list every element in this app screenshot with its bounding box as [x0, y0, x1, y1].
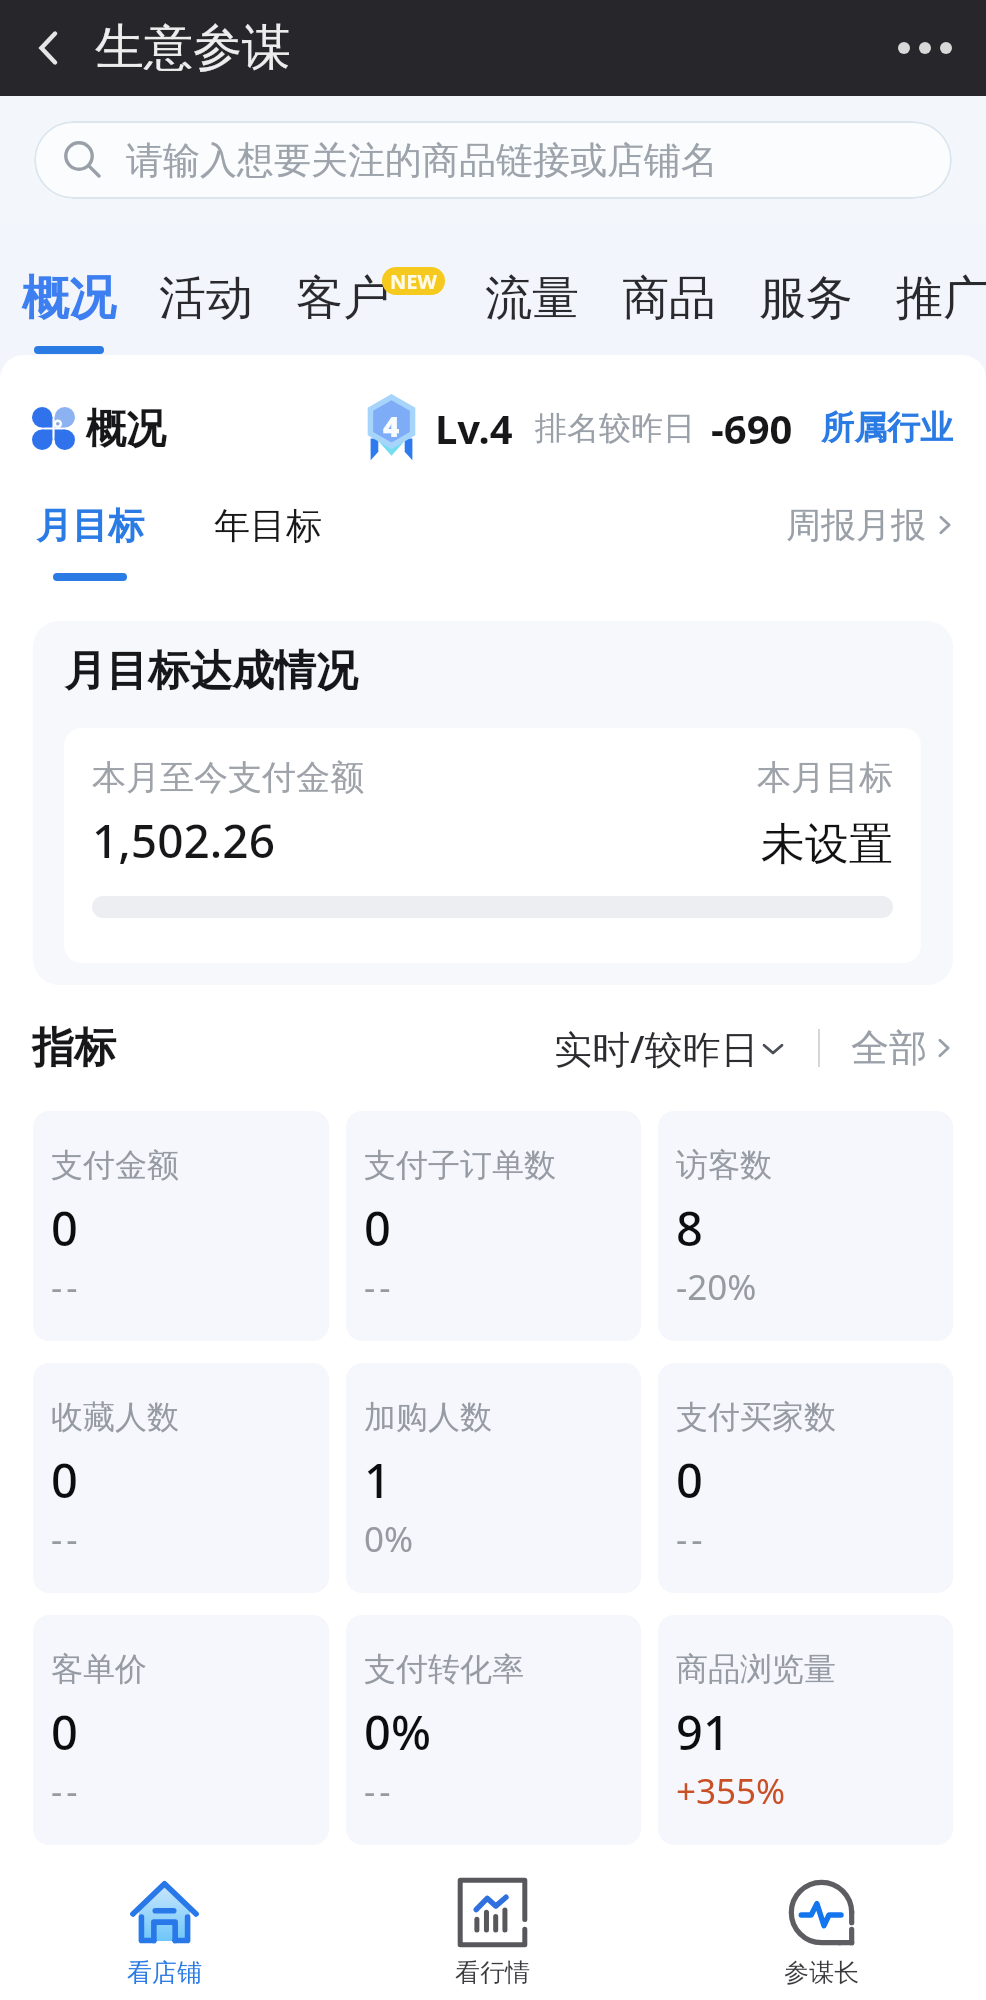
button[interactable]: More options: [890, 13, 960, 83]
staticText: --: [676, 1515, 707, 1563]
staticText: 1: [364, 1448, 391, 1512]
button[interactable]: 收藏人数: [33, 1363, 329, 1593]
staticText: 0: [51, 1700, 78, 1764]
staticText: 8: [676, 1196, 703, 1260]
staticText: 商品: [622, 269, 716, 328]
staticText: 支付金额: [51, 1145, 179, 1185]
staticText: NEW: [390, 268, 437, 295]
staticText: --: [51, 1515, 82, 1563]
button[interactable]: 所属行业: [821, 407, 953, 449]
staticText: 指标: [32, 1022, 116, 1075]
button[interactable]: 商品浏览量: [658, 1615, 953, 1845]
staticText: --: [51, 1263, 82, 1311]
button[interactable]: 周报月报: [786, 503, 958, 547]
staticText: 年目标: [214, 503, 322, 548]
staticText: 周报月报: [786, 503, 926, 547]
staticText: -20%: [676, 1263, 757, 1311]
staticText: 月目标: [36, 503, 144, 548]
staticText: 看店铺: [127, 1957, 202, 1988]
staticText: --: [364, 1263, 395, 1311]
button[interactable]: 看行情: [328, 1845, 657, 2000]
button[interactable]: 支付买家数: [658, 1363, 953, 1593]
button[interactable]: 访客数: [658, 1111, 953, 1341]
button[interactable]: 支付子订单数: [346, 1111, 641, 1341]
staticText: Lv.4: [435, 401, 513, 455]
staticText: 0: [51, 1196, 78, 1260]
staticText: 看行情: [455, 1957, 530, 1988]
button[interactable]: Back: [18, 17, 80, 79]
button[interactable]: 活动: [159, 224, 253, 328]
button[interactable]: 实时/较昨日: [554, 1022, 787, 1074]
button[interactable]: 请输入想要关注的商品链接或店铺名: [34, 121, 952, 199]
staticText: 排名较昨日: [535, 408, 695, 448]
staticText: 0: [364, 1196, 391, 1260]
staticText: 加购人数: [364, 1397, 492, 1437]
button[interactable]: 客单价: [33, 1615, 329, 1845]
staticText: 0: [51, 1448, 78, 1512]
button[interactable]: 年目标: [214, 503, 322, 548]
staticText: 91: [676, 1700, 730, 1764]
staticText: 0%: [364, 1515, 414, 1563]
staticText: 概况: [86, 403, 166, 453]
staticText: --: [51, 1767, 82, 1815]
staticText: 0%: [364, 1700, 431, 1764]
staticText: 4: [383, 407, 400, 445]
staticText: 访客数: [676, 1145, 772, 1185]
staticText: 客户: [296, 269, 390, 328]
staticText: --: [364, 1767, 395, 1815]
staticText: 概况: [22, 269, 116, 328]
staticText: +355%: [676, 1767, 786, 1815]
staticText: -690: [711, 401, 793, 455]
button[interactable]: 月目标: [36, 503, 144, 581]
staticText: 支付子订单数: [364, 1145, 556, 1185]
staticText: 支付买家数: [676, 1397, 836, 1437]
button[interactable]: 客户: [296, 224, 390, 328]
staticText: 活动: [159, 269, 253, 328]
staticText: 生意参谋: [95, 17, 291, 79]
staticText: 收藏人数: [51, 1397, 179, 1437]
staticText: 支付转化率: [364, 1649, 524, 1689]
staticText: 本月至今支付金额: [92, 756, 364, 799]
staticText: 请输入想要关注的商品链接或店铺名: [126, 137, 718, 184]
staticText: 推广: [896, 269, 986, 328]
button[interactable]: 服务: [759, 224, 853, 328]
staticText: 本月目标: [757, 756, 893, 799]
staticText: 所属行业: [821, 407, 953, 449]
button[interactable]: 流量: [485, 224, 579, 328]
staticText: 商品浏览量: [676, 1649, 836, 1689]
staticText: 实时/较昨日: [554, 1022, 759, 1074]
button[interactable]: 加购人数: [346, 1363, 641, 1593]
button[interactable]: 参谋长: [657, 1845, 986, 2000]
staticText: 流量: [485, 269, 579, 328]
button[interactable]: 月目标达成情况: [33, 621, 953, 985]
staticText: 1,502.26: [92, 809, 275, 872]
button[interactable]: 支付金额: [33, 1111, 329, 1341]
staticText: 0: [676, 1448, 703, 1512]
button[interactable]: 支付转化率: [346, 1615, 641, 1845]
button[interactable]: 商品: [622, 224, 716, 328]
staticText: 未设置: [761, 817, 893, 872]
staticText: 参谋长: [784, 1957, 859, 1988]
staticText: 客单价: [51, 1649, 147, 1689]
staticText: 月目标达成情况: [64, 645, 358, 698]
button[interactable]: 推广: [896, 224, 986, 328]
button[interactable]: 全部: [851, 1024, 957, 1072]
button[interactable]: 看店铺: [0, 1845, 328, 2000]
staticText: 服务: [759, 269, 853, 328]
button[interactable]: 概况: [22, 224, 116, 354]
staticText: 全部: [851, 1024, 927, 1072]
